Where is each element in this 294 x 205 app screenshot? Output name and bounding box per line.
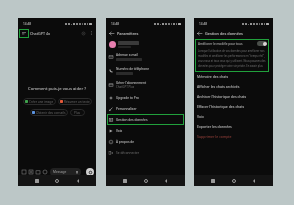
staticText: Message [53, 170, 67, 174]
staticText: Gérer l'abonnement [116, 81, 147, 85]
staticText: Voix [116, 129, 123, 133]
button[interactable]: Afficher les chats archivés [197, 81, 270, 91]
button[interactable]: Back [164, 179, 168, 183]
button[interactable]: À propos de [109, 136, 182, 147]
staticText: Archiver l'historique des chats [197, 94, 247, 99]
button[interactable]: Obtenir des conseils [32, 109, 66, 116]
staticText: Se déconnecter [116, 151, 140, 155]
button[interactable]: Back [252, 179, 256, 183]
button[interactable]: New chat [80, 30, 86, 36]
button[interactable]: Gestion des données [109, 114, 182, 125]
button[interactable]: Créer une image [25, 98, 54, 105]
button[interactable]: Dictate [75, 170, 79, 174]
staticText: Personnaliser [116, 107, 137, 111]
staticText: Créer une image [29, 100, 54, 104]
button[interactable]: Adresse e-mail [109, 50, 182, 64]
button[interactable]: Tools [42, 169, 48, 175]
staticText: ChatGPT 4o [30, 31, 51, 36]
button[interactable]: Plus [74, 109, 81, 116]
staticText: Effacer l'historique des chats [197, 104, 245, 109]
button[interactable]: Se déconnecter [109, 147, 182, 158]
button[interactable]: Back [108, 30, 114, 36]
staticText: À propos de [116, 140, 135, 144]
staticText: Obtenir des conseils [36, 111, 66, 115]
button[interactable]: Message [50, 168, 81, 176]
staticText: ChatGPT Plus [116, 85, 135, 89]
staticText: Mémoire des chats [197, 74, 229, 79]
button[interactable]: Mémoire des chats [197, 71, 270, 81]
button[interactable]: Home [232, 179, 236, 183]
button[interactable]: Recents [123, 179, 127, 183]
staticText: Lorsque l'utilisation de vos données pou… [198, 49, 267, 67]
button[interactable]: Recents [211, 179, 215, 183]
staticText: Afficher les chats archivés [197, 84, 240, 89]
staticText: Voix [197, 114, 204, 119]
staticText: Améliorer le modèle pour tous [198, 42, 243, 46]
button[interactable]: Personnaliser [109, 103, 182, 114]
staticText: Comment puis-je vous aider ? [18, 86, 96, 92]
button[interactable]: Toggle improve the model for everyone [257, 41, 267, 46]
button[interactable]: Back [76, 179, 80, 183]
button[interactable]: Camera [28, 169, 34, 175]
button[interactable]: Effacer l'historique des chats [197, 101, 270, 111]
button[interactable]: Home [144, 179, 148, 183]
button[interactable]: Back [196, 30, 202, 36]
staticText: Gestion des données [116, 118, 148, 122]
button[interactable]: Archiver l'historique des chats [197, 91, 270, 101]
button[interactable]: More options [88, 30, 94, 36]
button[interactable]: Menu [19, 29, 29, 38]
staticText: Résumer un texte [64, 100, 90, 104]
staticText: 14:48 [199, 22, 208, 26]
button[interactable]: Voix [109, 125, 182, 136]
button[interactable]: Améliorer le modèle pour tous [198, 41, 267, 72]
staticText: 14:48 [111, 22, 120, 26]
staticText: Gestion des données [205, 31, 243, 36]
button[interactable]: Voix [197, 111, 270, 121]
button[interactable]: Numéro de téléphone [109, 64, 182, 78]
staticText: Upgrade to Pro [116, 96, 139, 100]
staticText: Supprimer le compte [197, 134, 232, 139]
staticText: Paramètres [117, 31, 139, 36]
button[interactable]: Recents [35, 179, 39, 183]
staticText: 14:48 [23, 22, 32, 26]
button[interactable]: Gérer l'abonnement [109, 78, 182, 92]
button[interactable]: Upgrade to Pro [109, 92, 182, 103]
button[interactable] [109, 39, 185, 49]
button[interactable]: Home [55, 179, 59, 183]
button[interactable]: Add photo [21, 169, 27, 175]
button[interactable]: Voice mode [86, 168, 94, 176]
staticText: Adresse e-mail [116, 53, 138, 57]
button[interactable]: Exporter les données [197, 121, 270, 131]
button[interactable]: Files [35, 169, 41, 175]
staticText: Plus [74, 111, 81, 115]
button[interactable]: Résumer un texte [60, 98, 90, 105]
staticText: Numéro de téléphone [116, 67, 149, 71]
button[interactable]: Supprimer le compte [197, 131, 270, 141]
staticText: Exporter les données [197, 124, 232, 129]
